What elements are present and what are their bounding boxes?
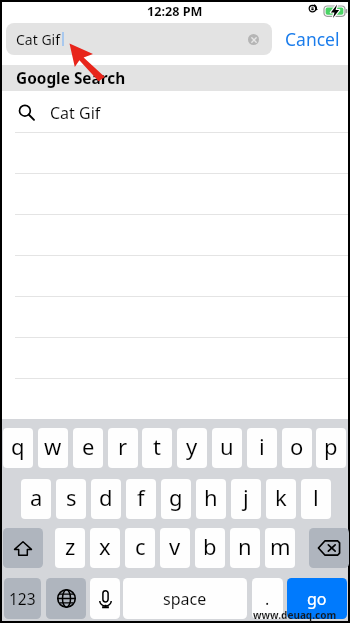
staticText: x [99,531,111,561]
staticText: j [243,482,249,512]
button[interactable]: g [161,479,191,519]
button[interactable]: i [247,428,277,468]
button[interactable]: w [38,428,68,468]
staticText: k [275,482,287,512]
button[interactable]: Clear text [248,34,259,45]
staticText: m [270,531,291,561]
staticText: n [238,531,252,561]
button[interactable]: u [212,428,242,468]
button[interactable]: z [55,528,85,568]
button[interactable]: e [73,428,103,468]
button[interactable]: t [142,428,172,468]
button[interactable]: Dictate [90,578,120,619]
button[interactable]: space [123,578,247,619]
button[interactable]: m [265,528,295,568]
button[interactable]: r [108,428,138,468]
staticText: Google Search [16,68,126,89]
button[interactable]: . [252,578,283,619]
staticText: b [203,531,217,561]
staticText: go [307,588,327,610]
button[interactable]: x [90,528,120,568]
button[interactable]: l [301,479,331,519]
staticText: s [66,482,77,512]
staticText: Cat Gif [16,30,61,49]
staticText: p [324,431,338,461]
button[interactable]: c [125,528,155,568]
staticText: e [82,431,95,461]
button[interactable]: Backspace [309,528,349,568]
button[interactable]: go [287,578,347,619]
staticText: f [137,482,145,512]
button[interactable]: Cat Gif [6,23,272,55]
staticText: Cancel [285,27,340,51]
button[interactable]: o [282,428,312,468]
staticText: l [313,482,319,512]
staticText: h [204,482,218,512]
staticText: . [265,588,270,610]
button[interactable]: b [195,528,225,568]
staticText: q [11,431,25,461]
button[interactable]: Cancel [285,23,340,55]
staticText: i [259,431,265,461]
button[interactable]: p [316,428,346,468]
staticText: t [153,431,161,461]
staticText: o [290,431,304,461]
staticText: Cat Gif [50,102,101,124]
staticText: www.deuaq.com [253,608,337,622]
staticText: z [65,531,76,561]
staticText: 123 [9,588,36,609]
button[interactable]: Switch keyboard [46,578,86,619]
button[interactable]: s [56,479,86,519]
staticText: space [163,588,207,610]
staticText: y [186,431,198,461]
button[interactable]: h [196,479,226,519]
staticText: w [44,431,62,461]
button[interactable]: k [266,479,296,519]
button[interactable]: a [21,479,51,519]
button[interactable]: Shift [3,528,43,568]
button[interactable]: j [231,479,261,519]
staticText: 12:28 PM [147,3,203,20]
staticText: d [99,482,113,512]
staticText: v [169,531,181,561]
button[interactable]: y [177,428,207,468]
button[interactable]: f [126,479,156,519]
staticText: g [169,482,183,512]
button[interactable]: v [160,528,190,568]
button[interactable]: q [3,428,33,468]
staticText: a [30,482,43,512]
staticText: r [118,431,128,461]
button[interactable]: n [230,528,260,568]
button[interactable]: Cat Gif [2,92,348,133]
staticText: c [135,531,146,561]
button[interactable]: 123 [4,578,41,619]
button[interactable]: d [91,479,121,519]
staticText: u [220,431,234,461]
